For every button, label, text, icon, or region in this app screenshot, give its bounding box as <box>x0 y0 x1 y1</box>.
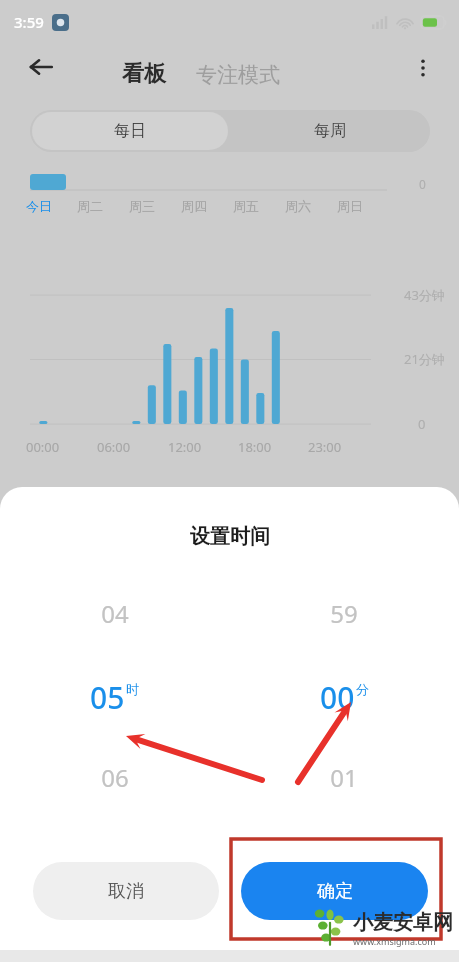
staticText: 周六 <box>285 198 311 214</box>
staticText: 59 <box>330 597 358 630</box>
button[interactable]: 04 <box>0 597 229 817</box>
button[interactable]: 取消 <box>33 862 219 920</box>
button[interactable]: 看板 <box>122 60 166 88</box>
staticText: 每日 <box>114 121 146 141</box>
staticText: 06:00 <box>97 438 131 456</box>
staticText: 05 <box>90 677 125 718</box>
staticText: 21分钟 <box>404 350 445 368</box>
button[interactable]: 每周 <box>230 110 430 152</box>
button[interactable]: 确定 <box>241 862 428 920</box>
button[interactable]: 周三 <box>129 198 181 214</box>
staticText: 确定 <box>317 880 353 903</box>
staticText: 专注模式 <box>196 62 280 88</box>
button[interactable]: 周六 <box>285 198 337 214</box>
staticText: 设置时间 <box>190 524 270 549</box>
staticText: 00 <box>320 677 355 718</box>
staticText: 12:00 <box>168 438 202 456</box>
staticText: 取消 <box>108 880 144 903</box>
staticText: 43分钟 <box>404 286 445 304</box>
staticText: 周日 <box>337 198 363 214</box>
staticText: 00:00 <box>26 438 60 456</box>
button[interactable]: 周五 <box>233 198 285 214</box>
button[interactable]: Back <box>18 44 64 90</box>
staticText: 0 <box>419 176 426 192</box>
staticText: 01 <box>330 761 358 794</box>
staticText: 分 <box>356 681 369 697</box>
button[interactable]: 59 <box>229 597 459 817</box>
staticText: www.xmsigma.com <box>353 935 436 947</box>
staticText: 看板 <box>122 60 166 88</box>
staticText: 23:00 <box>308 438 342 456</box>
staticText: 3:59 <box>14 12 44 32</box>
button[interactable]: 周二 <box>77 198 129 214</box>
staticText: 周二 <box>77 198 103 214</box>
staticText: 06 <box>101 761 129 794</box>
button[interactable]: 专注模式 <box>196 62 280 88</box>
staticText: 周五 <box>233 198 259 214</box>
staticText: 18:00 <box>238 438 272 456</box>
staticText: 周四 <box>181 198 207 214</box>
button[interactable]: 每日 <box>32 112 228 150</box>
button[interactable]: 周四 <box>181 198 233 214</box>
staticText: 小麦安卓网 <box>353 910 453 935</box>
button[interactable]: 今日 <box>26 198 77 214</box>
staticText: 0 <box>418 415 426 433</box>
staticText: 每周 <box>314 121 346 141</box>
button[interactable]: 周日 <box>337 198 389 214</box>
staticText: 周三 <box>129 198 155 214</box>
staticText: 时 <box>126 681 139 697</box>
button[interactable]: More options <box>401 46 445 90</box>
staticText: 今日 <box>26 198 52 214</box>
staticText: 04 <box>101 597 129 630</box>
